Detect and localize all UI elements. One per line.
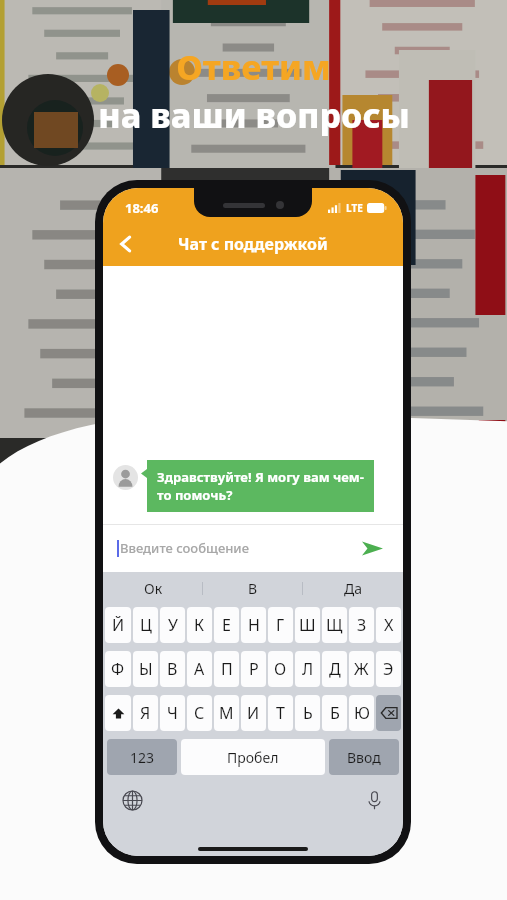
button[interactable]: Ж xyxy=(349,651,374,687)
staticText: З xyxy=(357,614,367,636)
staticText: Э xyxy=(383,658,394,680)
button[interactable]: Б xyxy=(322,695,347,731)
button[interactable]: Э xyxy=(376,651,401,687)
button[interactable]: Ш xyxy=(295,607,320,643)
button[interactable]: З xyxy=(349,607,374,643)
button[interactable]: М xyxy=(214,695,239,731)
staticText: Да xyxy=(344,579,362,598)
button[interactable]: Ч xyxy=(160,695,185,731)
staticText: Ь xyxy=(303,702,313,724)
button[interactable]: Н xyxy=(241,607,266,643)
button[interactable]: Voice input xyxy=(357,783,391,817)
staticText: Г xyxy=(276,614,285,636)
staticText: О xyxy=(274,658,287,680)
staticText: Л xyxy=(302,658,314,680)
button[interactable]: Х xyxy=(376,607,401,643)
button[interactable]: Л xyxy=(295,651,320,687)
staticText: на ваши вопросы xyxy=(98,92,410,138)
button[interactable]: Ф xyxy=(105,651,131,687)
button[interactable]: К xyxy=(187,607,212,643)
button[interactable]: Д xyxy=(322,651,347,687)
staticText: Пробел xyxy=(227,748,279,767)
staticText: Ответим xyxy=(176,44,331,90)
staticText: Чат с поддержкой xyxy=(178,233,328,255)
staticText: В xyxy=(248,579,258,598)
staticText: Б xyxy=(330,702,340,724)
button[interactable]: Да xyxy=(303,572,403,604)
staticText: Ж xyxy=(354,658,369,680)
button[interactable]: Ы xyxy=(133,651,158,687)
staticText: У xyxy=(168,614,178,636)
button[interactable]: Shift xyxy=(105,695,131,731)
staticText: А xyxy=(194,658,205,680)
button[interactable]: Р xyxy=(241,651,266,687)
staticText: Здравствуйте! Я могу вам чем- то помочь? xyxy=(157,468,364,504)
button[interactable]: Ок xyxy=(103,572,203,604)
button[interactable]: Send xyxy=(355,531,389,565)
staticText: Ы xyxy=(139,658,153,680)
button[interactable]: И xyxy=(241,695,266,731)
staticText: LTE xyxy=(346,201,363,215)
staticText: 123 xyxy=(130,748,155,767)
staticText: Т xyxy=(276,702,285,724)
staticText: Е xyxy=(222,614,231,636)
button[interactable]: Ь xyxy=(295,695,320,731)
button[interactable]: Введите сообщение xyxy=(117,524,355,572)
button[interactable]: Ц xyxy=(133,607,158,643)
staticText: Ш xyxy=(299,614,316,636)
button[interactable]: Здравствуйте! Я могу вам чем- то помочь? xyxy=(147,460,374,512)
button[interactable]: П xyxy=(214,651,239,687)
button[interactable]: С xyxy=(187,695,212,731)
staticText: Й xyxy=(112,614,125,636)
button[interactable]: В xyxy=(203,572,303,604)
staticText: Введите сообщение xyxy=(120,539,249,557)
staticText: П xyxy=(221,658,233,680)
staticText: Щ xyxy=(326,614,343,636)
button[interactable]: Г xyxy=(268,607,293,643)
button[interactable]: Change keyboard language xyxy=(115,783,149,817)
button[interactable]: В xyxy=(160,651,185,687)
button[interactable]: О xyxy=(268,651,293,687)
staticText: Р xyxy=(249,658,259,680)
staticText: К xyxy=(194,614,205,636)
staticText: Ф xyxy=(111,658,125,680)
button[interactable]: А xyxy=(187,651,212,687)
button[interactable]: Т xyxy=(268,695,293,731)
button[interactable]: Пробел xyxy=(181,739,325,775)
staticText: Ч xyxy=(167,702,178,724)
button[interactable]: 123 xyxy=(107,739,177,775)
button[interactable]: У xyxy=(160,607,185,643)
button[interactable]: Ввод xyxy=(329,739,399,775)
staticText: Н xyxy=(248,614,260,636)
staticText: 18:46 xyxy=(125,199,159,217)
button[interactable]: Щ xyxy=(322,607,347,643)
staticText: С xyxy=(194,702,205,724)
button[interactable]: Я xyxy=(133,695,158,731)
button[interactable]: Backspace xyxy=(376,695,401,731)
button[interactable]: Back xyxy=(103,222,149,266)
staticText: Ввод xyxy=(347,748,381,767)
staticText: Ок xyxy=(144,579,163,598)
staticText: И xyxy=(247,702,260,724)
staticText: Д xyxy=(329,658,341,680)
staticText: Я xyxy=(140,702,151,724)
button[interactable]: Ю xyxy=(349,695,374,731)
button[interactable]: Й xyxy=(105,607,131,643)
staticText: Ц xyxy=(140,614,152,636)
staticText: Ю xyxy=(354,702,370,724)
staticText: Х xyxy=(384,614,394,636)
staticText: В xyxy=(167,658,178,680)
button[interactable]: Е xyxy=(214,607,239,643)
staticText: М xyxy=(219,702,234,724)
